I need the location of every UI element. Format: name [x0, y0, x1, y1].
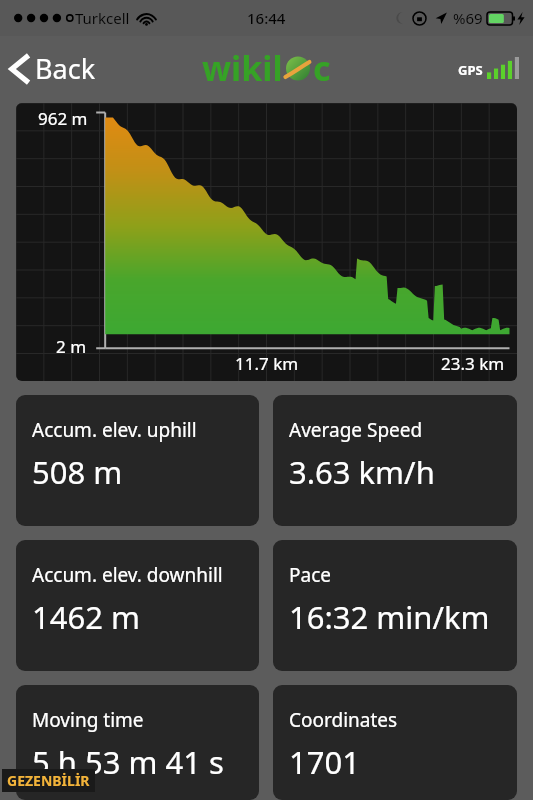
button[interactable]: wikil [196, 41, 337, 95]
staticText: 16:32 min/km [289, 596, 490, 638]
button[interactable]: Average Speed [273, 395, 517, 526]
button[interactable]: Moving time [16, 685, 259, 800]
staticText: Moving time [32, 707, 144, 733]
button[interactable]: Pace [273, 540, 517, 671]
button[interactable]: Back [0, 42, 110, 95]
staticText: Average Speed [289, 417, 423, 443]
staticText: 3.63 km/h [289, 451, 435, 493]
staticText: 1701 [289, 741, 360, 783]
staticText: 508 m [32, 451, 123, 493]
button[interactable]: 962 m [16, 103, 517, 381]
staticText: 5 h 53 m 41 s [32, 741, 224, 783]
staticText: 11.7 km [235, 352, 299, 375]
staticText: wikil [202, 45, 283, 91]
button[interactable]: Accum. elev. uphill [16, 395, 259, 526]
staticText: GPS [458, 61, 483, 79]
staticText: c [313, 45, 331, 91]
staticText: 16:44 [247, 8, 286, 28]
button[interactable]: Coordinates [273, 685, 517, 800]
staticText: 962 m [38, 107, 88, 130]
staticText: %69 [453, 8, 483, 28]
staticText: Pace [289, 562, 331, 588]
staticText: Coordinates [289, 707, 398, 733]
staticText: 1462 m [32, 596, 140, 638]
staticText: GEZENBİLİR [7, 771, 90, 790]
staticText: Turkcell [75, 8, 130, 28]
staticText: Accum. elev. uphill [32, 417, 197, 443]
staticText: 2 m [56, 335, 87, 358]
staticText: 23.3 km [441, 352, 505, 375]
staticText: Back [35, 50, 96, 87]
button[interactable]: Accum. elev. downhill [16, 540, 259, 671]
staticText: Accum. elev. downhill [32, 562, 223, 588]
